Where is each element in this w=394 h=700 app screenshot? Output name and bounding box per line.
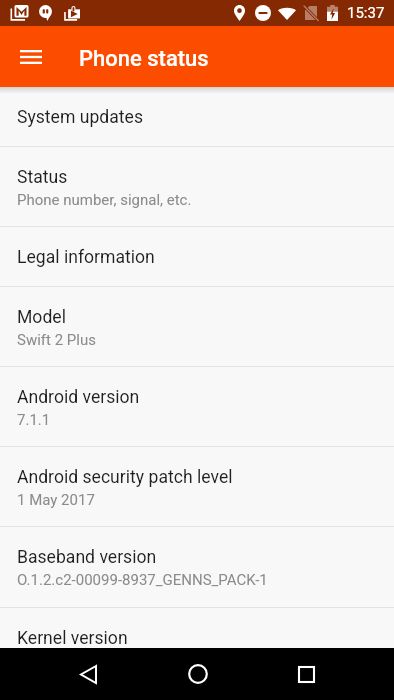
button[interactable]: Baseband version [0, 527, 394, 608]
staticText: O.1.2.c2-00099-8937_GENNS_PACK-1 [17, 571, 268, 589]
button[interactable]: Recent apps [252, 648, 361, 700]
staticText: Legal information [17, 247, 155, 268]
button[interactable]: Android version [0, 367, 394, 447]
staticText: System updates [17, 107, 143, 128]
button[interactable]: System updates [0, 87, 394, 147]
staticText: 1 May 2017 [17, 491, 95, 509]
staticText: Status [17, 167, 68, 188]
staticText: Phone status [79, 46, 209, 72]
button[interactable]: Model [0, 287, 394, 367]
staticText: Baseband version [17, 547, 157, 568]
staticText: Swift 2 Plus [17, 331, 96, 349]
button[interactable]: Status [0, 147, 394, 227]
staticText: Phone number, signal, etc. [17, 191, 192, 209]
button[interactable]: Legal information [0, 227, 394, 287]
staticText: 7.1.1 [17, 411, 51, 429]
button[interactable]: Open navigation drawer [9, 35, 52, 78]
staticText: Kernel version [17, 628, 128, 648]
staticText: Model [17, 307, 66, 328]
staticText: Android version [17, 387, 140, 408]
button[interactable]: Home [143, 648, 252, 700]
button[interactable]: Android security patch level [0, 447, 394, 527]
staticText: Android security patch level [17, 467, 233, 488]
staticText: 15:37 [347, 4, 385, 22]
button[interactable]: Kernel version [0, 608, 394, 648]
button[interactable]: Back [34, 648, 143, 700]
